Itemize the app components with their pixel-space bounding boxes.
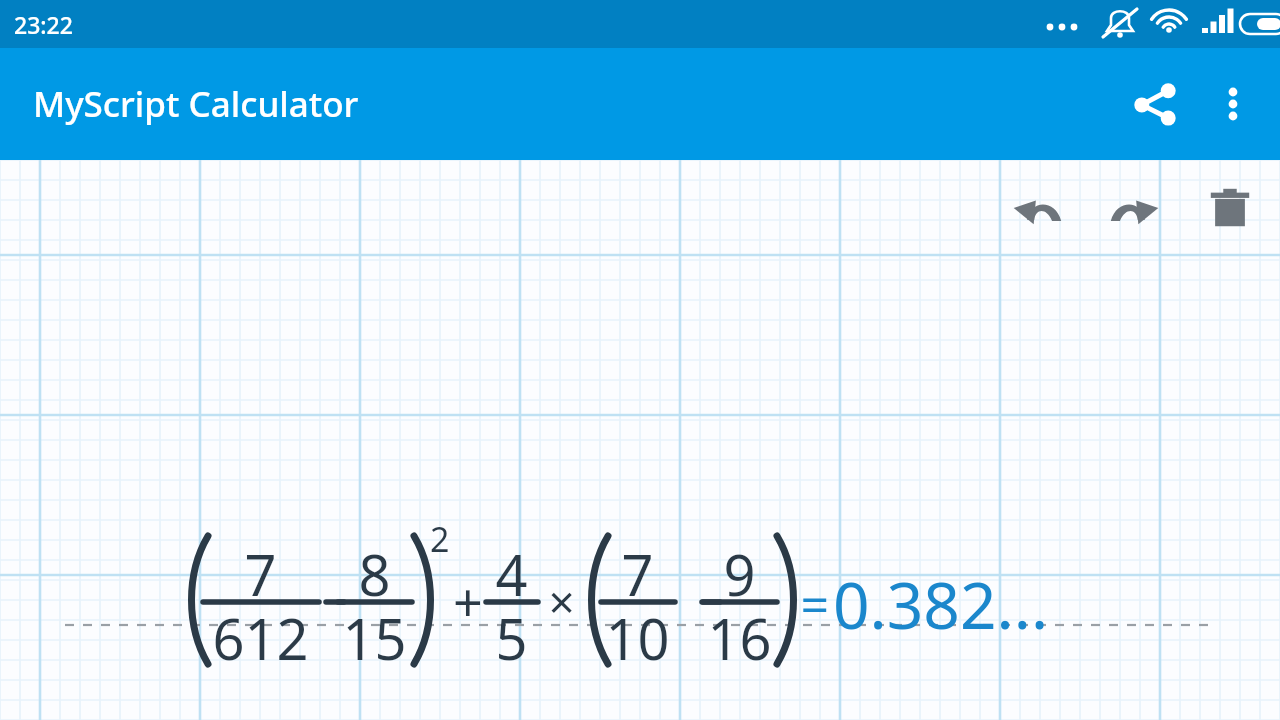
staticText: 23:22 (14, 9, 73, 40)
button[interactable]: Redo (1096, 170, 1172, 246)
button[interactable]: Undo (1000, 170, 1076, 246)
button[interactable]: Delete (1192, 170, 1268, 246)
staticText: MyScript Calculator (33, 80, 359, 128)
button[interactable]: Share (1116, 65, 1194, 143)
button[interactable]: More options (1194, 65, 1272, 143)
